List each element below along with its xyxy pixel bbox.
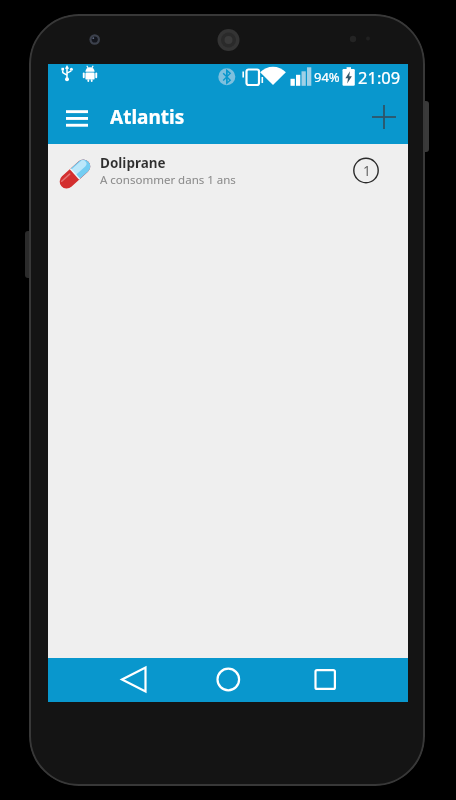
button[interactable]: [66, 108, 88, 126]
staticText: A consommer dans 1 ans: [100, 172, 236, 188]
staticText: 1: [363, 162, 371, 180]
staticText: 21:09: [358, 66, 401, 88]
button[interactable]: [371, 104, 397, 130]
button[interactable]: [301, 662, 349, 698]
staticText: Atlantis: [110, 104, 185, 130]
button[interactable]: [204, 662, 252, 698]
button[interactable]: [109, 662, 157, 698]
button[interactable]: Doliprane: [48, 144, 408, 202]
staticText: 94%: [314, 68, 340, 86]
staticText: Doliprane: [100, 154, 166, 172]
